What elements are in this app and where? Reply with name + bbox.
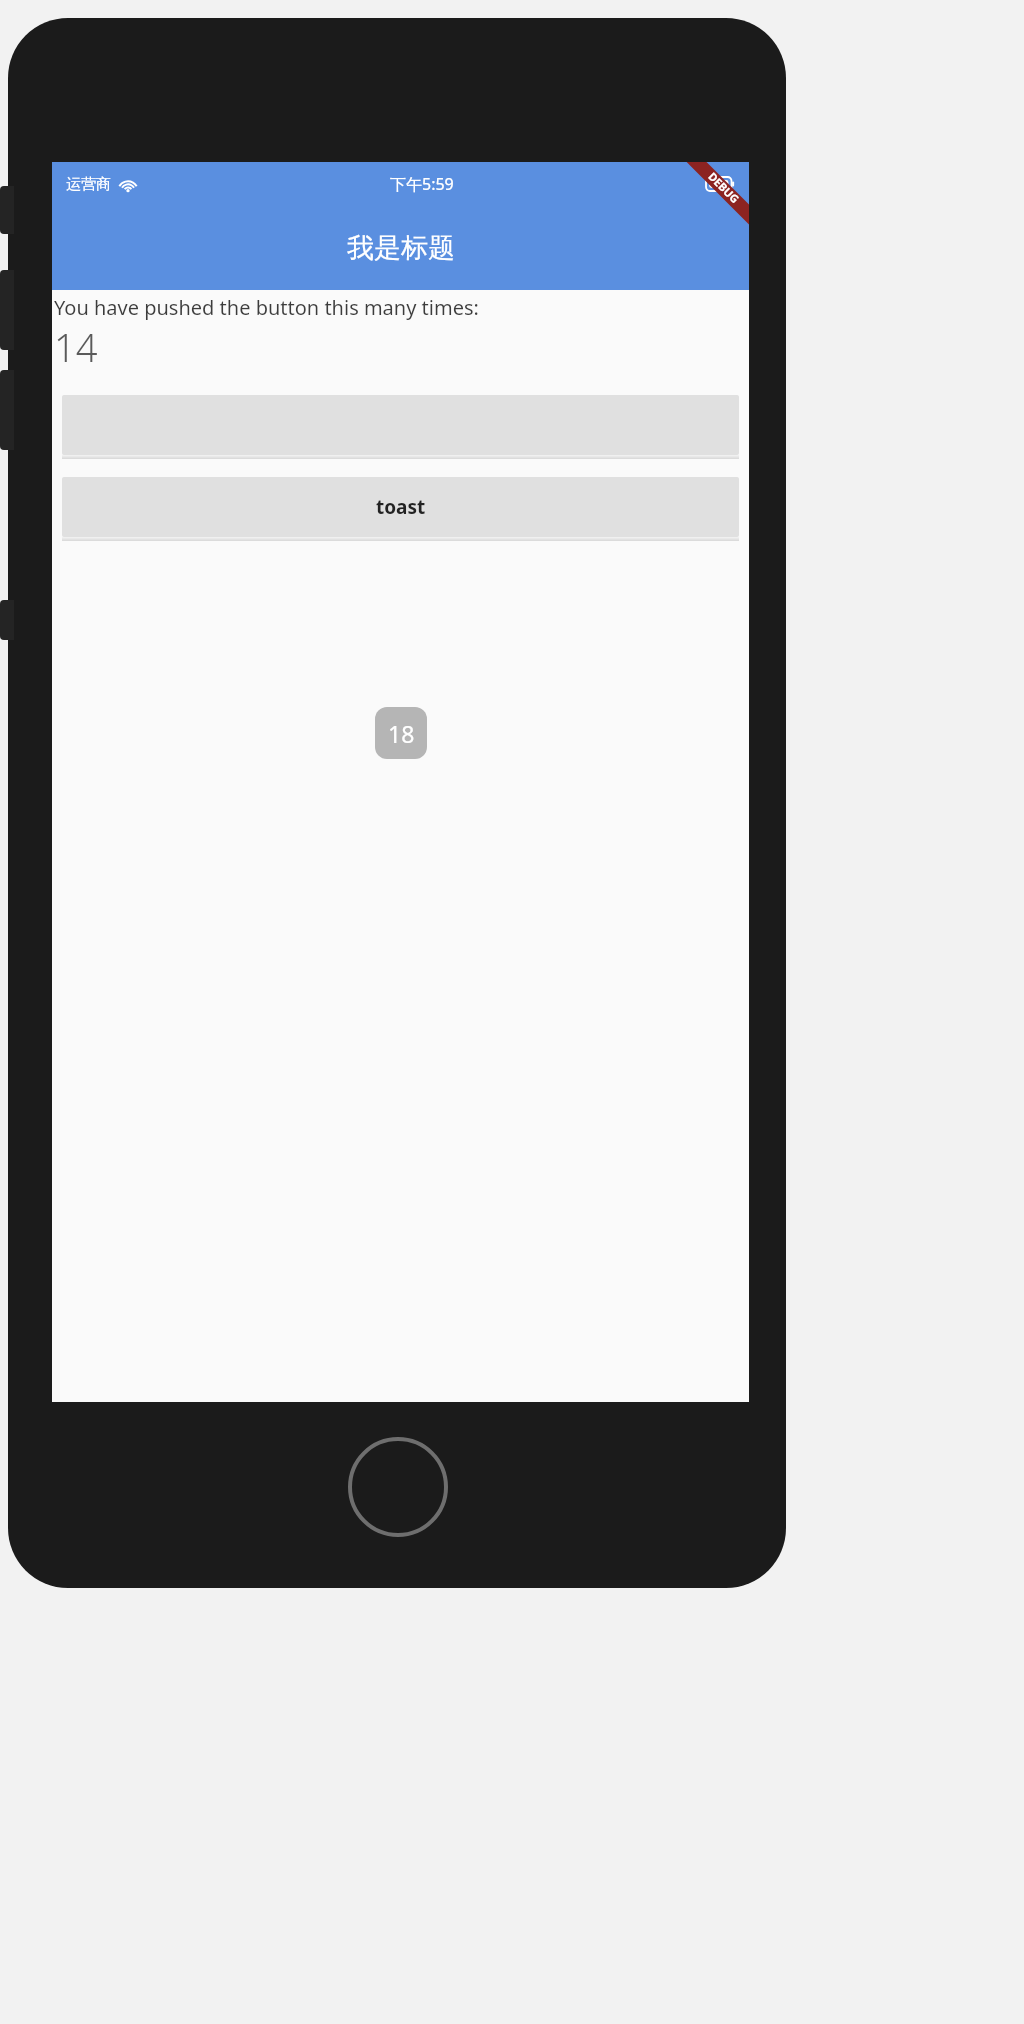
staticText: 我是标题	[347, 231, 455, 265]
staticText: 下午5:59	[390, 173, 454, 195]
staticText: toast	[376, 494, 426, 520]
staticText: 运营商	[66, 175, 111, 194]
button[interactable]: toast	[62, 477, 739, 537]
staticText: You have pushed the button this many tim…	[54, 294, 479, 321]
button[interactable]: Badge 18	[375, 707, 427, 759]
staticText: DEBUG	[705, 169, 743, 206]
staticText: 14	[54, 321, 98, 373]
staticText: 18	[388, 718, 415, 749]
